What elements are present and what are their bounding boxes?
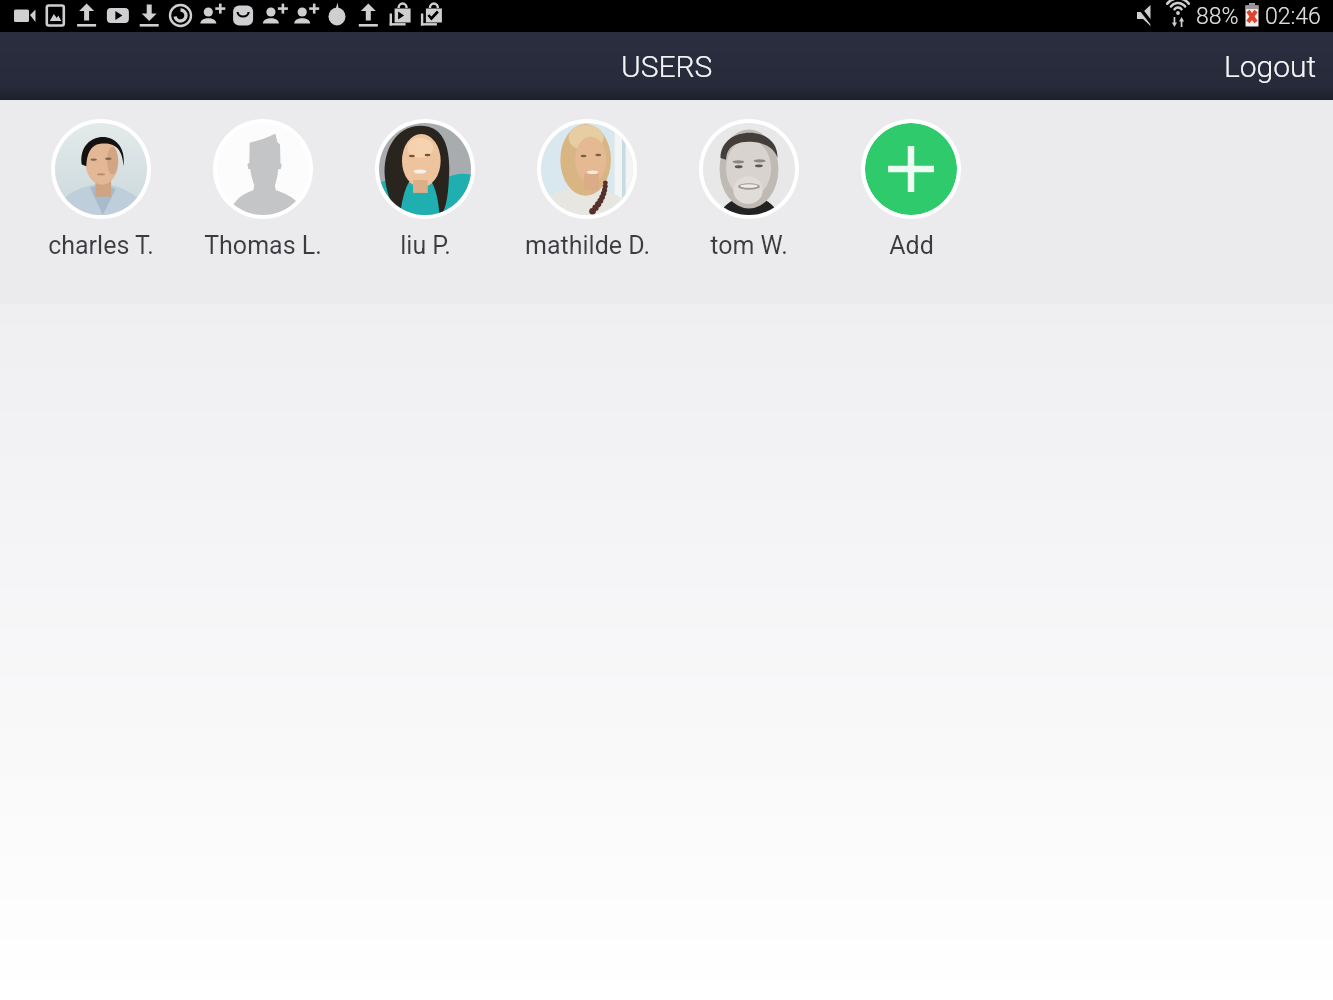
button[interactable]: Thomas L. bbox=[182, 119, 344, 274]
staticText: charles T. bbox=[48, 231, 154, 260]
staticText: Add bbox=[889, 231, 934, 260]
button[interactable]: mathilde D. bbox=[506, 119, 668, 274]
staticText: liu P. bbox=[400, 231, 451, 260]
staticText: Logout bbox=[1224, 49, 1317, 84]
staticText: mathilde D. bbox=[525, 231, 650, 260]
button[interactable]: Add user bbox=[830, 119, 992, 274]
other: Add user bbox=[865, 123, 957, 215]
staticText: 02:46 bbox=[1265, 3, 1321, 30]
button[interactable]: charles T. bbox=[20, 119, 182, 274]
staticText: USERS bbox=[621, 49, 713, 84]
button[interactable]: Logout bbox=[1198, 39, 1333, 94]
button[interactable]: liu P. bbox=[344, 119, 506, 274]
staticText: 88% bbox=[1196, 3, 1239, 30]
button[interactable]: tom W. bbox=[668, 119, 830, 274]
staticText: Thomas L. bbox=[204, 231, 322, 260]
staticText: tom W. bbox=[710, 231, 788, 260]
